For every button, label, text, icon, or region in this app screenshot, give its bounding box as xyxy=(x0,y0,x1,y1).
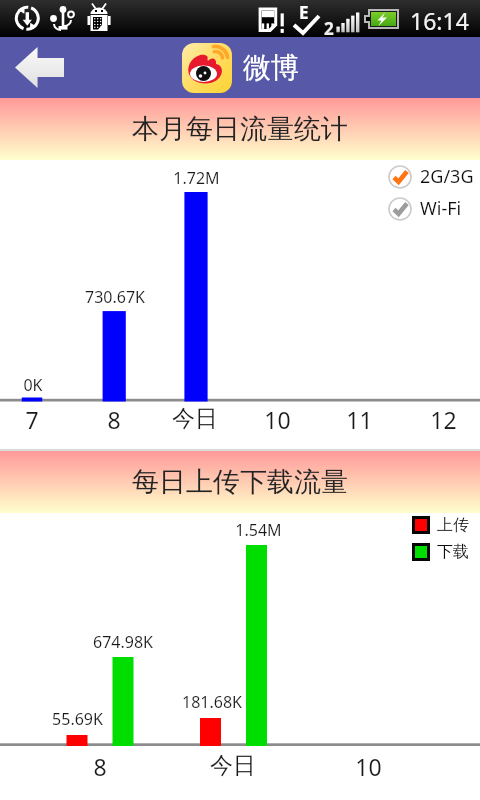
button[interactable]: 下载 xyxy=(410,540,471,564)
staticText: 0K xyxy=(23,374,43,396)
staticText: Wi-Fi xyxy=(420,196,462,221)
staticText: 每日上传下载流量 xyxy=(132,465,348,499)
staticText: 1.54M xyxy=(235,519,282,541)
staticText: 微博 xyxy=(243,50,299,85)
staticText: 今日 xyxy=(172,404,218,433)
button[interactable]: 上传 xyxy=(410,513,471,537)
staticText: 上传 xyxy=(437,515,469,535)
staticText: 12 xyxy=(430,404,457,435)
button[interactable]: 2G/3G xyxy=(386,162,476,191)
staticText: E xyxy=(299,1,309,24)
button[interactable]: Back xyxy=(0,37,78,98)
staticText: 181.68K xyxy=(182,691,242,713)
staticText: 7 xyxy=(25,404,39,435)
staticText: 今日 xyxy=(210,751,256,780)
staticText: 10 xyxy=(355,751,382,782)
button[interactable]: Wi-Fi xyxy=(386,194,464,223)
staticText: 2 xyxy=(324,17,334,40)
staticText: 730.67K xyxy=(85,286,145,308)
staticText: 下载 xyxy=(437,542,469,562)
staticText: 8 xyxy=(93,751,107,782)
staticText: 16:14 xyxy=(410,5,469,36)
staticText: 1.72M xyxy=(173,167,220,189)
staticText: 本月每日流量统计 xyxy=(132,112,348,146)
staticText: 674.98K xyxy=(93,631,153,653)
staticText: 10 xyxy=(264,404,291,435)
staticText: 8 xyxy=(107,404,121,435)
staticText: 11 xyxy=(346,404,373,435)
staticText: 55.69K xyxy=(52,708,103,730)
staticText: 2G/3G xyxy=(420,164,474,189)
